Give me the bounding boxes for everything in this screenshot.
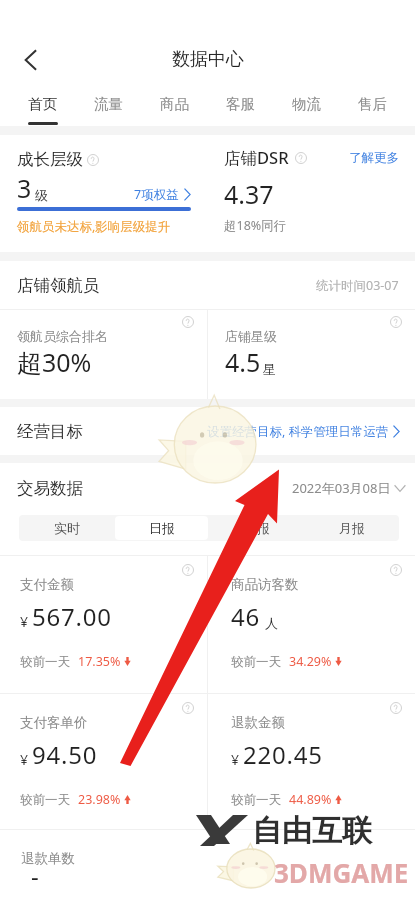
staticText: 店铺星级: [225, 328, 277, 344]
staticText: 流量: [94, 95, 123, 113]
staticText: 退款单数: [21, 850, 75, 867]
button[interactable]: 物流: [273, 82, 339, 126]
button[interactable]: 商品: [141, 82, 207, 126]
staticText: 售后: [358, 95, 387, 113]
staticText: 超18%同行: [224, 217, 287, 234]
staticText: 较前一天: [20, 792, 70, 808]
button[interactable]: 7项权益: [134, 186, 191, 205]
staticText: 7项权益: [134, 186, 179, 203]
staticText: 星: [263, 361, 276, 377]
staticText: ¥: [20, 612, 29, 631]
staticText: 店铺领航员: [17, 275, 100, 296]
button[interactable]: 日报: [115, 516, 208, 540]
staticText: 商品: [160, 95, 189, 113]
staticText: 44.89%: [289, 791, 332, 808]
button[interactable]: 首页: [10, 82, 75, 126]
staticText: -: [31, 859, 40, 884]
staticText: ¥: [20, 750, 29, 769]
staticText: 人: [265, 615, 278, 631]
staticText: 较前一天: [20, 654, 70, 670]
button[interactable]: Back: [8, 38, 52, 82]
button[interactable]: 了解更多: [349, 150, 399, 166]
button[interactable]: 月报: [304, 516, 399, 540]
button[interactable]: 退款单数: [0, 830, 207, 899]
staticText: 较前一天: [231, 792, 281, 808]
staticText: 46: [231, 600, 261, 633]
button[interactable]: 店铺星级: [208, 310, 415, 399]
staticText: 2022年03月08日: [292, 479, 391, 497]
staticText: 成长层级: [17, 149, 83, 170]
staticText: 4.5: [225, 345, 261, 379]
staticText: 超30%: [17, 345, 92, 379]
staticText: 94.50: [32, 738, 98, 771]
staticText: 17.35%: [78, 653, 121, 670]
staticText: 实时: [54, 520, 80, 536]
staticText: 3: [17, 171, 32, 205]
staticText: 设置经营目标, 科学管理日常运营: [207, 423, 389, 440]
staticText: 支付金额: [20, 576, 74, 593]
button[interactable]: 实时: [19, 516, 114, 540]
staticText: 月报: [339, 520, 365, 536]
staticText: 23.98%: [78, 791, 121, 808]
staticText: 首页: [28, 95, 57, 113]
button[interactable]: 退款金额: [208, 694, 415, 829]
button[interactable]: 周报: [209, 516, 304, 540]
staticText: 3DMGAME: [274, 855, 409, 890]
staticText: 支付客单价: [20, 714, 88, 731]
staticText: 周报: [244, 520, 270, 536]
button[interactable]: 售后: [339, 82, 405, 126]
staticText: ¥: [231, 750, 240, 769]
staticText: 领航员未达标,影响层级提升: [17, 218, 171, 235]
button[interactable]: 客服: [207, 82, 273, 126]
staticText: 经营目标: [17, 421, 83, 442]
staticText: 自由互联: [252, 812, 372, 850]
staticText: 商品访客数: [231, 576, 299, 593]
staticText: 统计时间03-07: [316, 277, 399, 294]
staticText: 数据中心: [172, 48, 244, 71]
button[interactable]: 商品访客数: [208, 556, 415, 693]
staticText: 级: [35, 187, 48, 203]
button[interactable]: 2022年03月08日: [292, 479, 405, 497]
staticText: 4.37: [224, 177, 274, 211]
button[interactable]: 流量: [75, 82, 141, 126]
staticText: 日报: [149, 520, 175, 536]
staticText: 客服: [226, 95, 255, 113]
staticText: 交易数据: [17, 478, 83, 499]
staticText: 店铺DSR: [224, 146, 289, 169]
staticText: 退款金额: [231, 714, 285, 731]
button[interactable]: 领航员综合排名: [0, 310, 207, 399]
staticText: 220.45: [243, 738, 323, 771]
staticText: 34.29%: [289, 653, 332, 670]
button[interactable]: 经营目标: [0, 407, 415, 455]
staticText: 较前一天: [231, 654, 281, 670]
staticText: 物流: [292, 95, 321, 113]
staticText: 567.00: [32, 600, 112, 633]
button[interactable]: 支付客单价: [0, 694, 207, 829]
button[interactable]: 支付金额: [0, 556, 207, 693]
staticText: 领航员综合排名: [17, 328, 108, 344]
